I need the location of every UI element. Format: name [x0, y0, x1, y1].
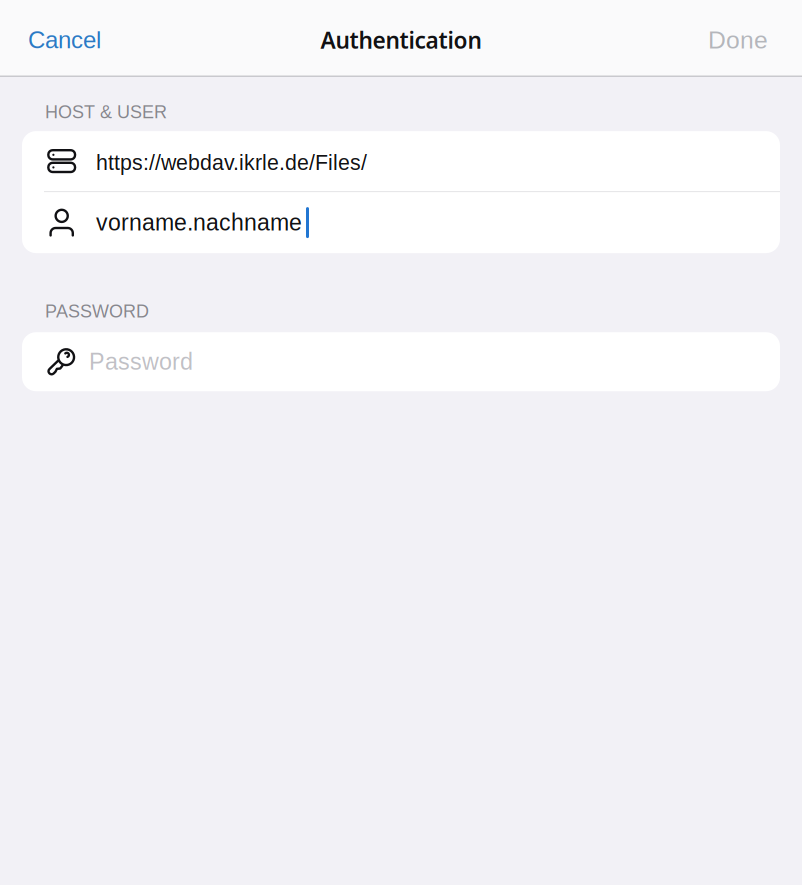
staticText: Password	[89, 349, 193, 375]
button[interactable]: Password	[22, 332, 780, 391]
staticText: Authentication	[320, 25, 481, 55]
button[interactable]: Done	[674, 9, 802, 68]
staticText: https://webdav.ikrle.de/Files/	[96, 151, 367, 174]
button[interactable]: Server address	[22, 131, 780, 191]
staticText: HOST & USER	[45, 102, 167, 122]
staticText: vorname.nachname	[96, 210, 302, 235]
button[interactable]: User name	[22, 192, 780, 253]
staticText: PASSWORD	[45, 301, 149, 321]
button[interactable]: Cancel	[0, 10, 129, 67]
staticText: Done	[708, 26, 768, 54]
staticText: Cancel	[28, 27, 101, 53]
